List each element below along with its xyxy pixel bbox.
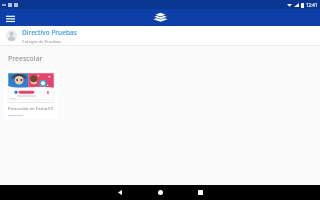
staticText: 12:41: [306, 2, 318, 8]
button[interactable]: Preescolar en Fecha ES: [4, 70, 58, 119]
button[interactable]: Home: [143, 185, 177, 200]
staticText: Preescolar: [8, 54, 43, 64]
staticText: Preescolar en Fecha ES: [8, 106, 53, 112]
button[interactable]: Recent apps: [183, 185, 217, 200]
button[interactable]: Directivo Pruebas: [0, 26, 320, 45]
staticText: Directivo Pruebas: [22, 28, 77, 37]
button[interactable]: App logo: [152, 12, 169, 23]
button[interactable]: Back: [103, 185, 137, 200]
button[interactable]: Open navigation drawer: [3, 11, 17, 25]
staticText: Colegio de Pruebas: [22, 38, 62, 44]
